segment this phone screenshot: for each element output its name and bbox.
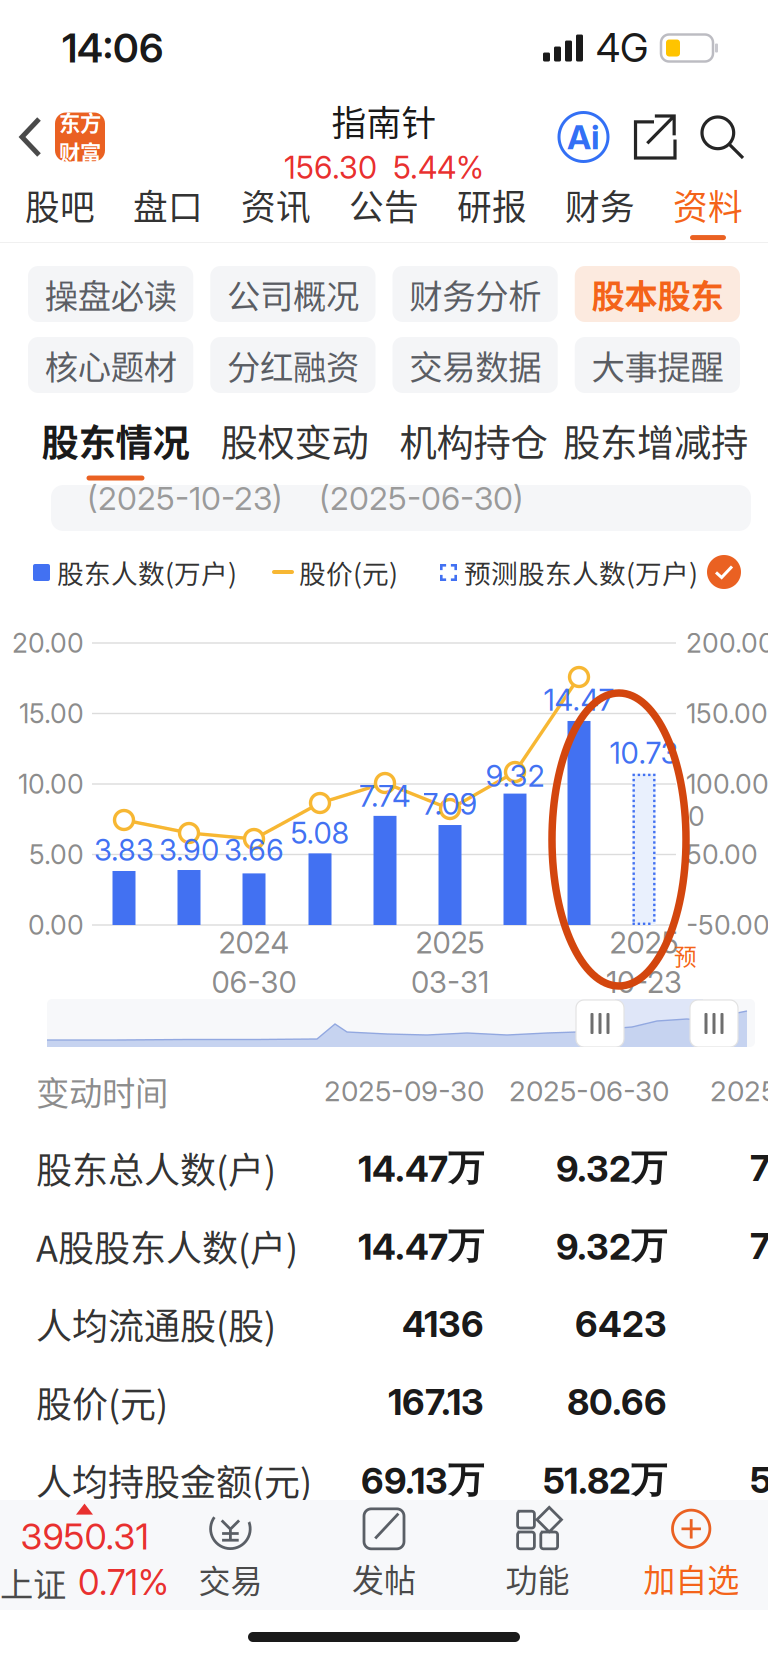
button[interactable]: 资料 xyxy=(654,178,762,242)
staticText: 6423 xyxy=(575,1302,667,1346)
button[interactable]: 资讯 xyxy=(222,178,330,242)
button[interactable]: 股吧 xyxy=(6,178,114,242)
staticText: 7.74 xyxy=(359,778,411,814)
button[interactable]: 操盘必读 xyxy=(28,266,193,322)
staticText: (2025-10-23) xyxy=(87,479,283,518)
staticText: 20.00 xyxy=(12,627,84,659)
staticText: 股价(元) xyxy=(299,553,398,591)
staticText: 股东情况 xyxy=(41,413,189,468)
staticText: 5.44% xyxy=(393,149,484,186)
button[interactable]: 研报 xyxy=(438,178,546,242)
staticText: 06-30 xyxy=(211,964,296,1000)
staticText: 0.00 xyxy=(28,909,84,941)
button[interactable]: 机构持仓 xyxy=(384,413,563,481)
staticText: 变动时间 xyxy=(36,1067,168,1115)
staticText: 交易 xyxy=(198,1556,262,1602)
staticText: 加自选 xyxy=(643,1555,739,1601)
staticText: 交易数据 xyxy=(409,341,541,389)
staticText: 股吧 xyxy=(25,180,95,230)
button[interactable]: 发帖 xyxy=(307,1509,461,1601)
staticText: 上证 xyxy=(0,1558,66,1606)
staticText: 5 xyxy=(750,1458,768,1502)
button[interactable]: 交易数据 xyxy=(392,337,558,393)
staticText: 公告 xyxy=(349,180,419,230)
button[interactable]: 股东情况 xyxy=(26,413,205,481)
staticText: 0 xyxy=(688,800,705,832)
staticText: 10.73 xyxy=(609,735,678,771)
staticText: 7 xyxy=(750,1224,768,1268)
staticText: (2025-06-30) xyxy=(319,479,524,518)
button[interactable]: 财务 xyxy=(546,178,654,242)
staticText: 资料 xyxy=(673,180,743,230)
staticText: 156.30 xyxy=(284,149,377,186)
button[interactable]: 交易 xyxy=(154,1508,307,1602)
staticText: 14.47万 xyxy=(358,1223,484,1269)
button[interactable]: 返回 xyxy=(20,101,105,173)
staticText: 资讯 xyxy=(241,180,311,230)
staticText: 机构持仓 xyxy=(399,413,547,468)
staticText: 操盘必读 xyxy=(45,270,177,318)
button[interactable]: 股东增减持 xyxy=(563,413,742,481)
staticText: 东方 xyxy=(59,107,101,137)
staticText: 股权变动 xyxy=(220,413,368,468)
staticText: 人均流通股(股) xyxy=(36,1298,276,1350)
staticText: 100.00 xyxy=(686,768,768,800)
staticText: 80.66 xyxy=(567,1380,667,1424)
staticText: 0.71% xyxy=(78,1561,169,1603)
button[interactable]: 上证指数 xyxy=(0,1504,154,1606)
button[interactable]: 核心题材 xyxy=(28,337,193,393)
button[interactable]: 大事提醒 xyxy=(575,337,740,393)
staticText: 人均持股金额(元) xyxy=(36,1454,312,1506)
staticText: 4136 xyxy=(402,1302,484,1346)
staticText: 2025 xyxy=(609,925,678,960)
staticText: 3.83 xyxy=(94,832,154,868)
staticText: 69.13万 xyxy=(361,1457,484,1503)
staticText: 预测股东人数(万户) xyxy=(464,553,698,591)
staticText: A股股东人数(户) xyxy=(36,1220,298,1272)
button[interactable]: AI 助手 xyxy=(559,112,608,161)
button[interactable]: 搜索 xyxy=(700,115,744,159)
staticText: 2025-06-30 xyxy=(509,1074,669,1108)
staticText: 10.00 xyxy=(18,768,84,800)
staticText: 167.13 xyxy=(388,1380,484,1424)
button[interactable]: 股本股东 xyxy=(575,266,740,322)
staticText: 财务 xyxy=(565,180,635,230)
staticText: 200.00 xyxy=(686,627,768,659)
staticText: 发帖 xyxy=(352,1555,416,1601)
button[interactable]: 财务分析 xyxy=(392,266,558,322)
staticText: 财务分析 xyxy=(409,270,541,318)
staticText: 14.47 xyxy=(543,682,614,718)
staticText: 财富 xyxy=(59,136,101,167)
button[interactable]: 加自选 xyxy=(614,1509,768,1601)
button[interactable]: 股权变动 xyxy=(205,413,384,481)
staticText: 预 xyxy=(674,939,697,972)
staticText: 大事提醒 xyxy=(591,341,723,389)
button[interactable]: 功能 xyxy=(461,1509,614,1601)
staticText: 研报 xyxy=(457,180,527,230)
staticText: 2024 xyxy=(218,925,289,960)
staticText: 股价(元) xyxy=(36,1376,168,1428)
staticText: 2025 xyxy=(415,925,484,960)
staticText: -50.00 xyxy=(686,909,768,941)
staticText: 3.90 xyxy=(159,832,219,868)
staticText: 5.00 xyxy=(29,838,84,871)
button[interactable]: 分享 xyxy=(633,116,675,158)
staticText: 14.47万 xyxy=(358,1145,484,1191)
button[interactable]: 盘口 xyxy=(114,178,222,242)
staticText: 15.00 xyxy=(19,697,84,730)
staticText: 盘口 xyxy=(133,180,203,230)
staticText: 9.32 xyxy=(485,758,544,794)
staticText: 股东增减持 xyxy=(563,413,748,468)
staticText: 功能 xyxy=(506,1555,570,1601)
button[interactable]: 分红融资 xyxy=(210,337,375,393)
staticText: 2025 xyxy=(710,1074,768,1108)
staticText: 7.09 xyxy=(422,786,477,822)
staticText: 指南针 xyxy=(331,96,436,146)
staticText: 5.08 xyxy=(290,815,349,851)
staticText: 股东总人数(户) xyxy=(36,1142,276,1194)
button[interactable]: 公司概况 xyxy=(210,266,375,322)
button[interactable]: 公告 xyxy=(330,178,438,242)
staticText: 公司概况 xyxy=(227,270,359,318)
staticText: 03-31 xyxy=(411,964,489,1000)
staticText: 9.32万 xyxy=(556,1223,667,1269)
